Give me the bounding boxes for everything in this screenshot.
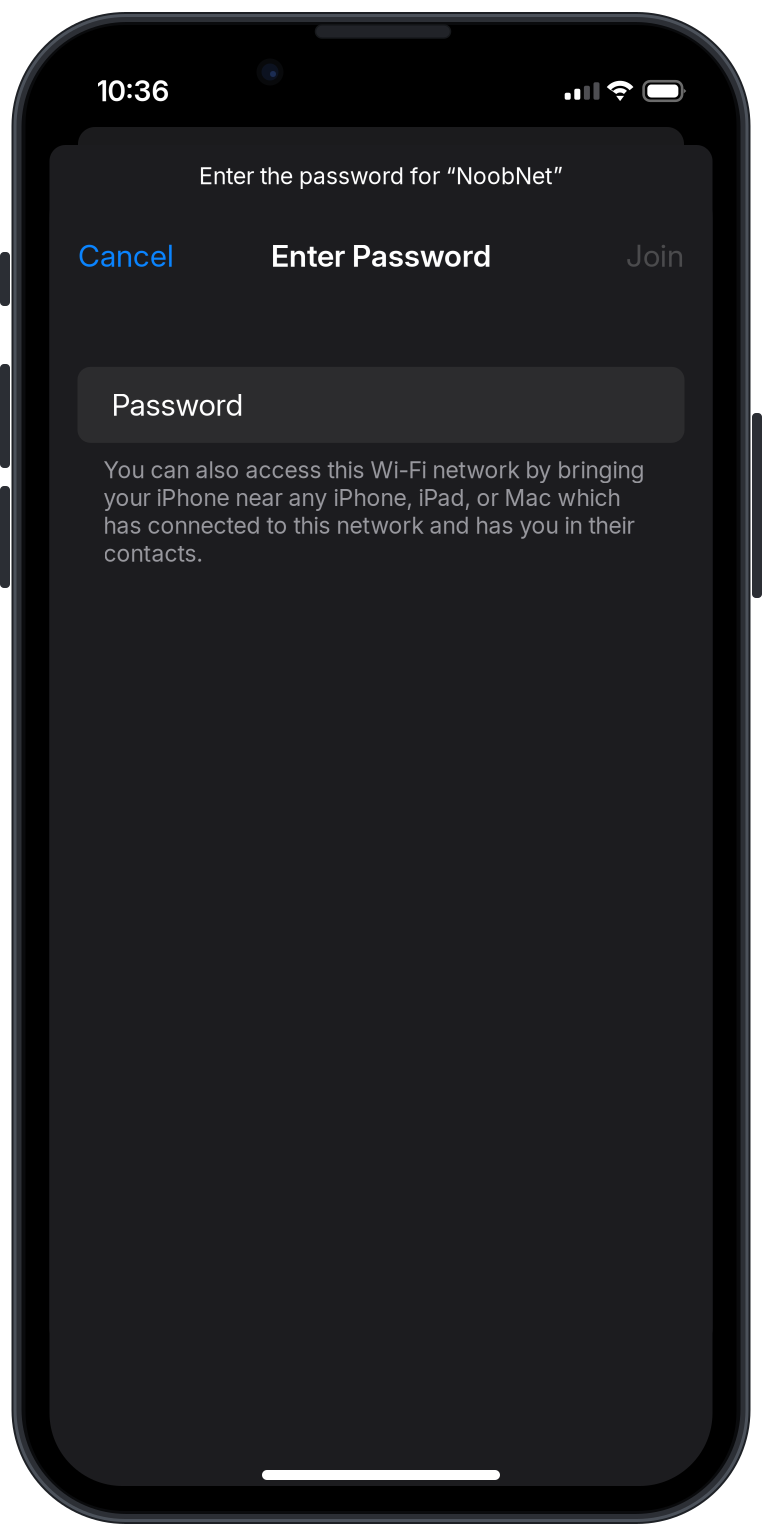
staticText: Join xyxy=(626,238,684,274)
staticText: 10:36 xyxy=(96,74,169,108)
staticText: Enter Password xyxy=(271,238,491,274)
button[interactable]: Join xyxy=(626,217,684,295)
button[interactable]: Cancel xyxy=(78,217,174,295)
staticText: Enter the password for “NoobNet” xyxy=(199,162,563,190)
staticText: Cancel xyxy=(78,238,174,274)
staticText: You can also access this Wi-Fi network b… xyxy=(103,456,644,567)
staticText: Password xyxy=(111,387,243,423)
